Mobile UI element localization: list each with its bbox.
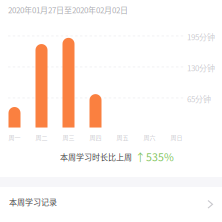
staticText: 130分钟 — [187, 62, 215, 74]
staticText: 65分钟 — [187, 93, 211, 105]
staticText: 周六 — [143, 133, 155, 142]
staticText: 周四 — [89, 133, 101, 142]
staticText: 本周学习记录 — [9, 196, 57, 208]
staticText: 周日 — [170, 133, 182, 142]
staticText: ↑535% — [135, 149, 174, 164]
staticText: 周五 — [116, 133, 128, 142]
button[interactable]: 本周学习记录 — [0, 187, 222, 222]
staticText: 周三 — [62, 133, 74, 142]
staticText: 周二 — [35, 133, 47, 142]
staticText: 本周学习时长比上周 — [60, 151, 132, 163]
staticText: 周一 — [8, 133, 20, 142]
staticText: 2020年01月27日至2020年02月02日 — [8, 4, 128, 16]
staticText: 195分钟 — [187, 31, 215, 43]
